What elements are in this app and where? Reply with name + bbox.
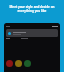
staticText: Meet your style and decide on everything… <box>4 5 60 12</box>
button[interactable]: Green theme <box>24 60 31 67</box>
button[interactable]: Red theme <box>6 60 13 67</box>
button[interactable] <box>6 29 58 37</box>
button[interactable]: Gold theme <box>15 60 22 67</box>
